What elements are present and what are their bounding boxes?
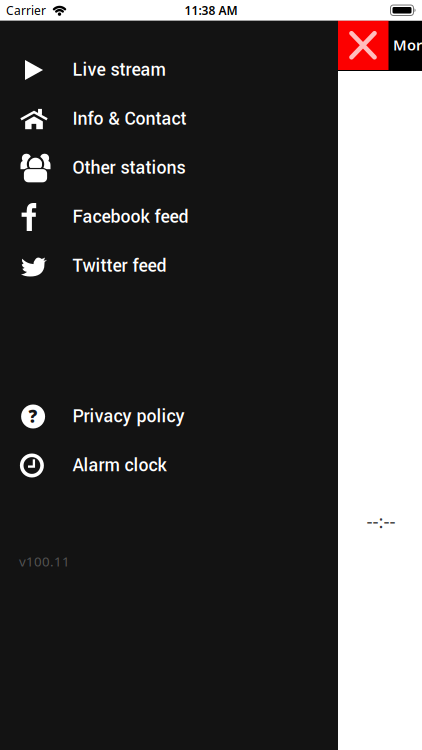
staticText: Alarm clock [72,453,166,478]
button[interactable]: ? [0,392,338,441]
staticText: Other stations [72,155,185,181]
button[interactable]: Twitter feed [0,241,338,290]
staticText: Privacy policy [72,404,184,429]
staticText: Facebook feed [72,204,188,230]
button[interactable]: Info & Contact [0,94,338,143]
staticText: More FM [393,35,422,54]
staticText: --:-- [366,509,395,533]
button[interactable]: Facebook feed [0,192,338,241]
button[interactable]: Alarm clock [0,441,338,490]
button[interactable]: Other stations [0,143,338,192]
staticText: Live stream [72,57,165,83]
staticText: ? [29,404,38,427]
staticText: 11:38 AM [184,2,237,18]
staticText: Carrier [6,2,46,18]
staticText: v100.11 [19,552,70,570]
button[interactable]: Close menu [337,20,388,70]
staticText: Info & Contact [72,106,186,132]
staticText: Twitter feed [72,253,166,279]
button[interactable]: Live stream [0,45,338,94]
